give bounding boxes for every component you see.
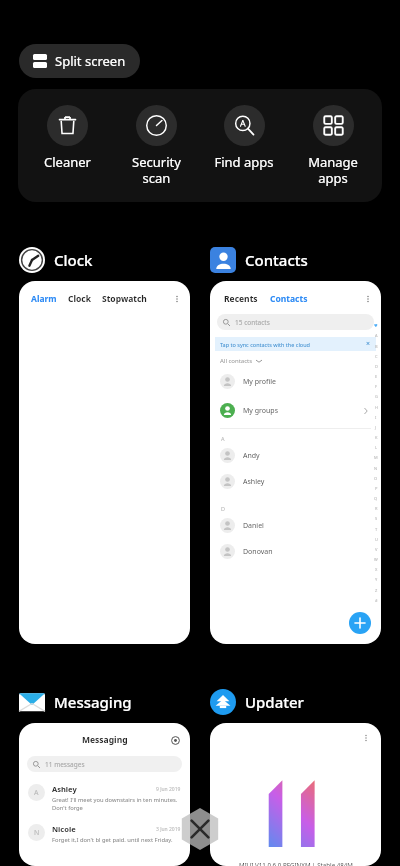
other: More options (172, 294, 182, 304)
staticText: Security scan (132, 153, 181, 186)
staticText: Contacts (245, 250, 308, 270)
other: More options (361, 733, 371, 743)
staticText: Forget it,I don't bl get paid. until nex… (52, 836, 173, 844)
staticText: H (375, 405, 378, 410)
button[interactable]: Clock (19, 247, 93, 273)
staticText: N (34, 828, 40, 838)
button[interactable]: Messaging (19, 723, 190, 866)
staticText: E (375, 374, 378, 379)
staticText: Cleaner (44, 153, 91, 171)
staticText: U (375, 537, 378, 542)
button[interactable]: More options (210, 723, 381, 866)
staticText: Find apps (214, 153, 274, 171)
staticText: S (375, 516, 378, 521)
staticText: Andy (243, 451, 260, 461)
staticText: Great! I'll meet you downstairs in ten m… (52, 796, 178, 812)
staticText: Manage apps (308, 153, 358, 186)
button[interactable]: Alarm (19, 281, 190, 644)
button[interactable]: A (28, 784, 181, 812)
staticText: 9 Jun 2019 (156, 786, 181, 793)
staticText: G (375, 394, 378, 399)
button[interactable]: Recents (210, 281, 381, 644)
staticText: Stopwatch (102, 293, 147, 305)
button[interactable]: Updater (210, 689, 304, 715)
staticText: Messaging (54, 692, 132, 712)
staticText: D (221, 505, 226, 512)
staticText: X (375, 567, 378, 572)
button[interactable]: Daniel (220, 518, 369, 533)
staticText: × (366, 339, 371, 349)
staticText: Alarm (31, 293, 57, 305)
button[interactable]: My groups (220, 403, 369, 418)
staticText: C (375, 354, 378, 359)
staticText: A (34, 788, 39, 798)
staticText: MIUI V11.0.6.0.PFGINXM | Stable 484M (239, 861, 353, 866)
staticText: M (374, 455, 378, 460)
staticText: A (221, 435, 225, 442)
staticText: My profile (243, 377, 276, 387)
other: Settings (171, 736, 180, 745)
staticText: V (375, 547, 378, 552)
staticText: L (375, 445, 378, 450)
staticText: Updater (245, 692, 304, 712)
staticText: K (375, 435, 378, 440)
staticText: A (375, 333, 378, 338)
button[interactable]: My profile (220, 374, 369, 389)
staticText: 11 messages (45, 760, 85, 769)
staticText: 3 Jun 2019 (156, 826, 181, 833)
staticText: J (375, 425, 377, 430)
staticText: D (375, 364, 378, 369)
staticText: O (374, 476, 378, 481)
button[interactable]: Andy (220, 448, 369, 463)
staticText: Clock (68, 293, 91, 305)
staticText: I (375, 415, 377, 420)
staticText: Clock (54, 250, 93, 270)
staticText: # (375, 598, 378, 603)
staticText: R (375, 506, 378, 511)
button[interactable]: Contacts (210, 247, 308, 273)
button[interactable]: Clear all (179, 808, 221, 850)
staticText: Split screen (55, 52, 126, 70)
button[interactable]: Messaging (19, 689, 132, 715)
staticText: W (374, 557, 378, 562)
staticText: Contacts (270, 293, 308, 305)
staticText: Messaging (82, 734, 128, 746)
button[interactable]: Ashley (220, 474, 369, 489)
staticText: Y (375, 577, 378, 582)
staticText: Recents (224, 293, 258, 305)
staticText: 15 contacts (235, 318, 270, 327)
button[interactable]: Cleaner (28, 105, 106, 171)
staticText: Ashley (243, 477, 265, 487)
staticText: My groups (243, 406, 279, 416)
staticText: T (375, 527, 378, 532)
staticText: All contacts (220, 357, 253, 365)
staticText: Donovan (243, 547, 273, 557)
staticText: Nicole (52, 824, 76, 834)
button[interactable]: Donovan (220, 544, 369, 559)
staticText: ♥ (374, 323, 378, 328)
staticText: B (375, 344, 378, 349)
staticText: N (374, 466, 378, 471)
staticText: F (375, 384, 378, 389)
staticText: Daniel (243, 521, 264, 531)
staticText: Q (374, 496, 378, 501)
button[interactable]: N (28, 824, 181, 844)
staticText: Z (375, 588, 378, 593)
button[interactable]: Find apps (205, 105, 283, 171)
staticText: Tap to sync contacts with the cloud (220, 341, 310, 348)
button[interactable]: Security scan (117, 105, 195, 186)
staticText: P (375, 486, 378, 491)
staticText: Ashley (52, 784, 77, 794)
other: More options (363, 294, 373, 304)
button[interactable]: Split screen (19, 44, 140, 78)
button[interactable]: Add contact (349, 612, 371, 634)
button[interactable]: Manage apps (294, 105, 372, 186)
